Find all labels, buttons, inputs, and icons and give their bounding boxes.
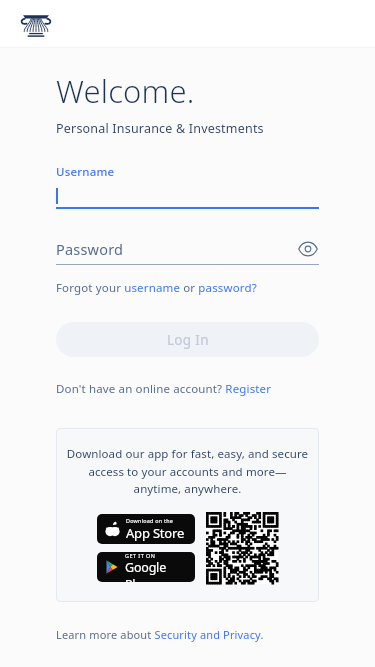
other: QR code to download the app <box>206 512 278 584</box>
staticText: Download on the <box>126 517 174 524</box>
button[interactable]: Password <box>56 238 319 265</box>
staticText: Username <box>56 164 115 180</box>
staticText: App Store <box>126 524 185 542</box>
button[interactable]: Username <box>56 164 319 209</box>
button[interactable]: Get it on Google Play <box>104 552 188 582</box>
staticText: Personal Insurance & Investments <box>56 120 264 137</box>
button[interactable]: Log In <box>56 322 319 357</box>
staticText: Learn more about Security and Privacy. <box>56 627 264 642</box>
staticText: Forgot your username or password? <box>56 280 257 296</box>
button[interactable]: Download on the App Store <box>104 514 188 544</box>
staticText: GET IT ON <box>125 552 156 559</box>
button[interactable]: Forgot your username or password? <box>56 280 257 296</box>
staticText: Log In <box>167 331 209 349</box>
button[interactable]: Learn more about Security and Privacy. <box>56 627 264 642</box>
button[interactable]: Show password <box>297 238 319 260</box>
staticText: Welcome. <box>56 70 195 112</box>
staticText: Password <box>56 239 297 259</box>
staticText: Don't have an online account? Register <box>56 381 272 397</box>
button[interactable]: Home <box>18 10 54 39</box>
staticText: Google Play <box>125 559 188 582</box>
staticText: Download our app for fast, easy, and sec… <box>65 446 310 496</box>
button[interactable]: Don't have an online account? Register <box>56 381 272 397</box>
